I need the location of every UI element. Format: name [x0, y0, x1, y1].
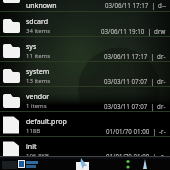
staticText: sys — [26, 42, 37, 52]
staticText: init — [26, 142, 37, 152]
staticText: 11 items — [26, 52, 51, 60]
staticText: 03/06/11 19:10 | drw — [101, 27, 166, 35]
button[interactable]: sdcard — [0, 12, 170, 37]
staticText: 34 items — [26, 27, 51, 35]
button[interactable]: sys — [0, 37, 170, 62]
staticText: system — [26, 67, 50, 77]
staticText: sdcard — [26, 17, 49, 27]
staticText: 106.8KB — [26, 152, 49, 160]
staticText: 13 items — [26, 77, 51, 85]
staticText: 1 items — [26, 102, 47, 110]
staticText: 01/01/70 01:00 | -r- — [106, 152, 166, 160]
staticText: 03/06/11 17:17 | d-- — [105, 1, 166, 9]
staticText: 01/01/70 01:00 | -r- — [106, 127, 166, 135]
staticText: default.prop — [26, 117, 67, 127]
button[interactable]: system — [0, 62, 170, 87]
button[interactable]: unknown — [0, 0, 170, 12]
staticText: unknown — [26, 1, 57, 11]
staticText: 03/03/11 07:07 | dr- — [104, 77, 166, 85]
staticText: 03/06/11 17:17 | dr- — [104, 52, 166, 60]
button[interactable]: vendor — [0, 87, 170, 112]
staticText: 03/03/11 07:07 | dr- — [104, 102, 166, 110]
button[interactable]: default.prop — [0, 112, 170, 137]
staticText: 118B — [26, 127, 41, 135]
staticText: vendor — [26, 92, 50, 102]
button[interactable]: init — [0, 137, 170, 162]
